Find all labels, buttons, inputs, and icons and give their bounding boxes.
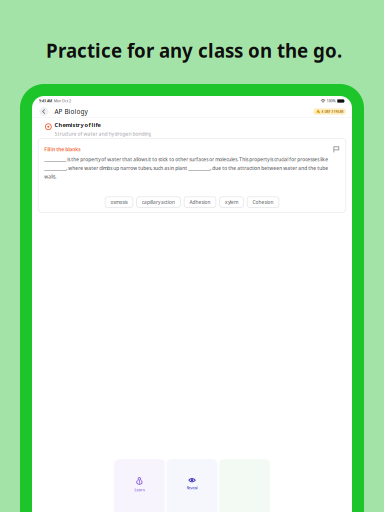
staticText: Structure of water and hydrogen bonding <box>54 130 151 137</box>
staticText: Chemistry of life <box>54 121 100 129</box>
staticText: osmosis <box>110 199 127 205</box>
staticText: 9:43 AM <box>39 99 52 103</box>
button[interactable]: Back <box>39 106 49 117</box>
staticText: Mon Oct 2 <box>52 99 71 103</box>
staticText: capillary action <box>142 199 175 205</box>
button[interactable]: Adhesion <box>184 197 216 207</box>
button[interactable]: Cohesion <box>247 197 279 207</box>
staticText: xylem <box>225 199 238 205</box>
staticText: AP Biology <box>55 107 88 116</box>
button[interactable]: 4 DAY STREAK <box>313 108 346 115</box>
staticText: 4 DAY STREAK <box>321 109 343 114</box>
button[interactable]: capillary action <box>137 197 180 207</box>
staticText: Fill in the blanks <box>44 146 80 153</box>
staticText: Practice for any class on the go. <box>46 38 342 63</box>
button[interactable]: xylem <box>220 197 243 207</box>
staticText: Learn <box>134 487 144 492</box>
button[interactable]: Report question <box>333 146 340 153</box>
button[interactable]: Reveal <box>166 459 217 512</box>
button[interactable]: osmosis <box>105 197 133 207</box>
button[interactable]: Learn <box>114 459 165 512</box>
staticText: Cohesion <box>252 199 273 205</box>
staticText: Adhesion <box>189 199 210 205</box>
staticText: ___________ is the property of water tha… <box>44 156 328 180</box>
staticText: Reveal <box>186 485 197 490</box>
staticText: 100% <box>327 99 336 103</box>
